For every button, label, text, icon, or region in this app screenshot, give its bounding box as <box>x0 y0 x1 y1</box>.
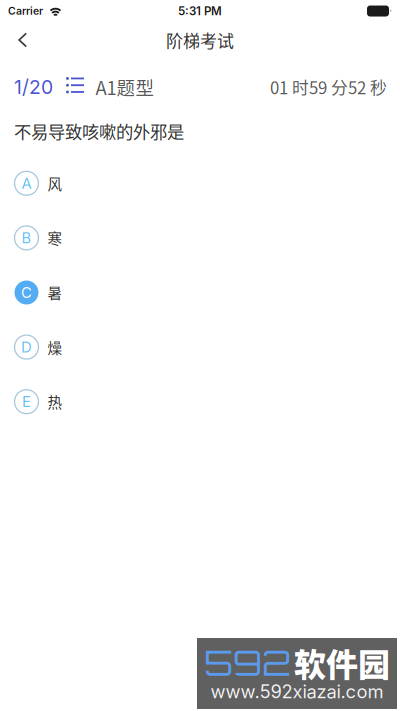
button[interactable]: B <box>0 211 400 265</box>
staticText: 不易导致咳嗽的外邪是 <box>14 118 184 143</box>
staticText: 燥 <box>47 337 62 358</box>
staticText: Carrier <box>8 5 43 17</box>
button[interactable]: Back <box>0 22 41 58</box>
staticText: 暑 <box>47 282 62 303</box>
button[interactable]: E <box>0 374 400 429</box>
button[interactable]: Question list <box>53 73 95 101</box>
staticText: A <box>21 174 31 192</box>
staticText: B <box>21 229 31 247</box>
button[interactable]: A <box>0 156 400 211</box>
staticText: 592 <box>204 641 291 684</box>
button[interactable]: C <box>0 265 400 320</box>
staticText: 阶梯考试 <box>166 28 234 52</box>
staticText: 5:31 PM <box>178 4 222 18</box>
staticText: A1题型 <box>95 74 154 100</box>
staticText: 寒 <box>47 227 62 248</box>
staticText: E <box>22 393 31 411</box>
staticText: 1/20 <box>14 75 53 99</box>
staticText: D <box>21 338 32 356</box>
staticText: www.592xiazai.com <box>210 680 383 703</box>
staticText: 软件园 <box>294 639 390 686</box>
staticText: 风 <box>47 173 62 194</box>
button[interactable]: D <box>0 320 400 374</box>
staticText: C <box>21 283 32 301</box>
staticText: 01 时59 分52 秒 <box>270 75 387 99</box>
staticText: 热 <box>47 391 62 412</box>
